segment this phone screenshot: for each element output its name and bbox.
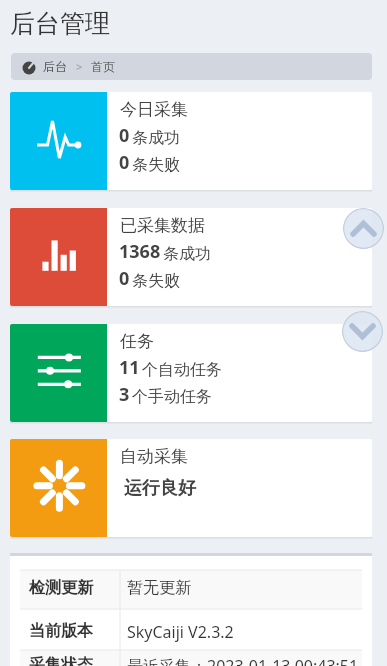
- button[interactable]: 后台: [19, 53, 69, 80]
- staticText: 自动采集: [120, 446, 188, 467]
- staticText: 检测更新: [29, 578, 93, 598]
- button[interactable]: 自动采集: [10, 439, 372, 537]
- staticText: 条成功: [163, 244, 211, 264]
- staticText: 11: [119, 355, 140, 380]
- staticText: 任务: [120, 331, 154, 352]
- button[interactable]: 后台: [11, 53, 372, 80]
- staticText: 0: [119, 150, 130, 175]
- staticText: 条失败: [132, 271, 180, 291]
- button[interactable]: [343, 208, 384, 249]
- staticText: 条失败: [132, 155, 180, 175]
- staticText: 后台: [43, 59, 67, 74]
- staticText: SkyCaiji V2.3.2: [127, 621, 234, 643]
- staticText: 采集状态: [29, 655, 93, 666]
- button[interactable]: 今日采集: [10, 92, 372, 190]
- button[interactable]: 首页: [87, 53, 121, 80]
- staticText: 运行良好: [124, 477, 196, 500]
- staticText: 后台管理: [10, 8, 110, 39]
- staticText: 暂无更新: [127, 578, 191, 598]
- staticText: 1368: [119, 239, 161, 264]
- staticText: 3: [119, 382, 130, 407]
- staticText: 最近采集：2023-01-13 00:43:51: [127, 655, 359, 666]
- staticText: 当前版本: [29, 621, 93, 641]
- staticText: 首页: [91, 59, 115, 74]
- button[interactable]: [342, 311, 383, 352]
- staticText: 0: [119, 266, 130, 291]
- staticText: 个自动任务: [142, 360, 222, 380]
- button[interactable]: 任务: [10, 324, 372, 422]
- staticText: 0: [119, 123, 130, 148]
- staticText: 今日采集: [120, 99, 188, 120]
- button[interactable]: 已采集数据: [10, 208, 372, 306]
- staticText: >: [76, 59, 83, 74]
- staticText: 个手动任务: [132, 387, 212, 407]
- staticText: 条成功: [132, 128, 180, 148]
- staticText: 已采集数据: [120, 215, 205, 236]
